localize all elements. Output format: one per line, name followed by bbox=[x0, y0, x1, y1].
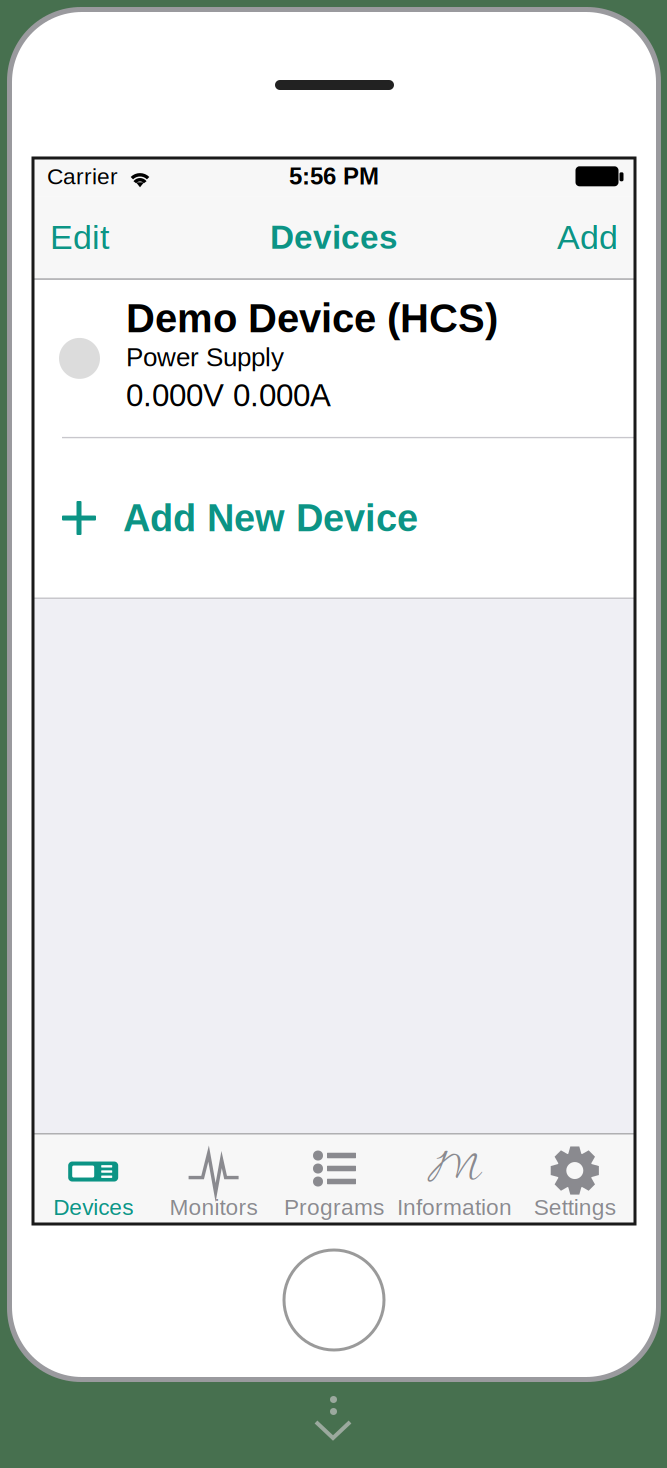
button[interactable]: Edit bbox=[33, 206, 126, 268]
button[interactable]: Monitors bbox=[153, 1135, 274, 1226]
button[interactable]: Add New Device bbox=[33, 438, 635, 597]
button[interactable]: Demo Device (HCS) bbox=[33, 280, 635, 437]
staticText: 0.000V 0.000A bbox=[126, 378, 331, 413]
staticText: Devices bbox=[270, 219, 398, 256]
staticText: Programs bbox=[284, 1194, 384, 1220]
staticText: Monitors bbox=[170, 1194, 258, 1220]
button[interactable]: Programs bbox=[274, 1135, 394, 1226]
staticText: Settings bbox=[534, 1194, 616, 1220]
staticText: Edit bbox=[50, 218, 109, 256]
staticText: 5:56 PM bbox=[289, 163, 379, 190]
staticText: Carrier bbox=[47, 164, 118, 189]
staticText: Add New Device bbox=[123, 497, 418, 539]
button[interactable]: Add bbox=[540, 206, 635, 268]
staticText: Add bbox=[557, 218, 618, 256]
button[interactable]: M bbox=[394, 1135, 515, 1226]
staticText: Power Supply bbox=[126, 343, 284, 372]
staticText: Information bbox=[397, 1194, 512, 1220]
staticText: M bbox=[428, 1141, 479, 1200]
button[interactable]: Devices bbox=[33, 1135, 153, 1226]
staticText: Demo Device (HCS) bbox=[126, 296, 498, 341]
button[interactable]: Settings bbox=[515, 1135, 635, 1226]
staticText: Devices bbox=[53, 1194, 133, 1220]
